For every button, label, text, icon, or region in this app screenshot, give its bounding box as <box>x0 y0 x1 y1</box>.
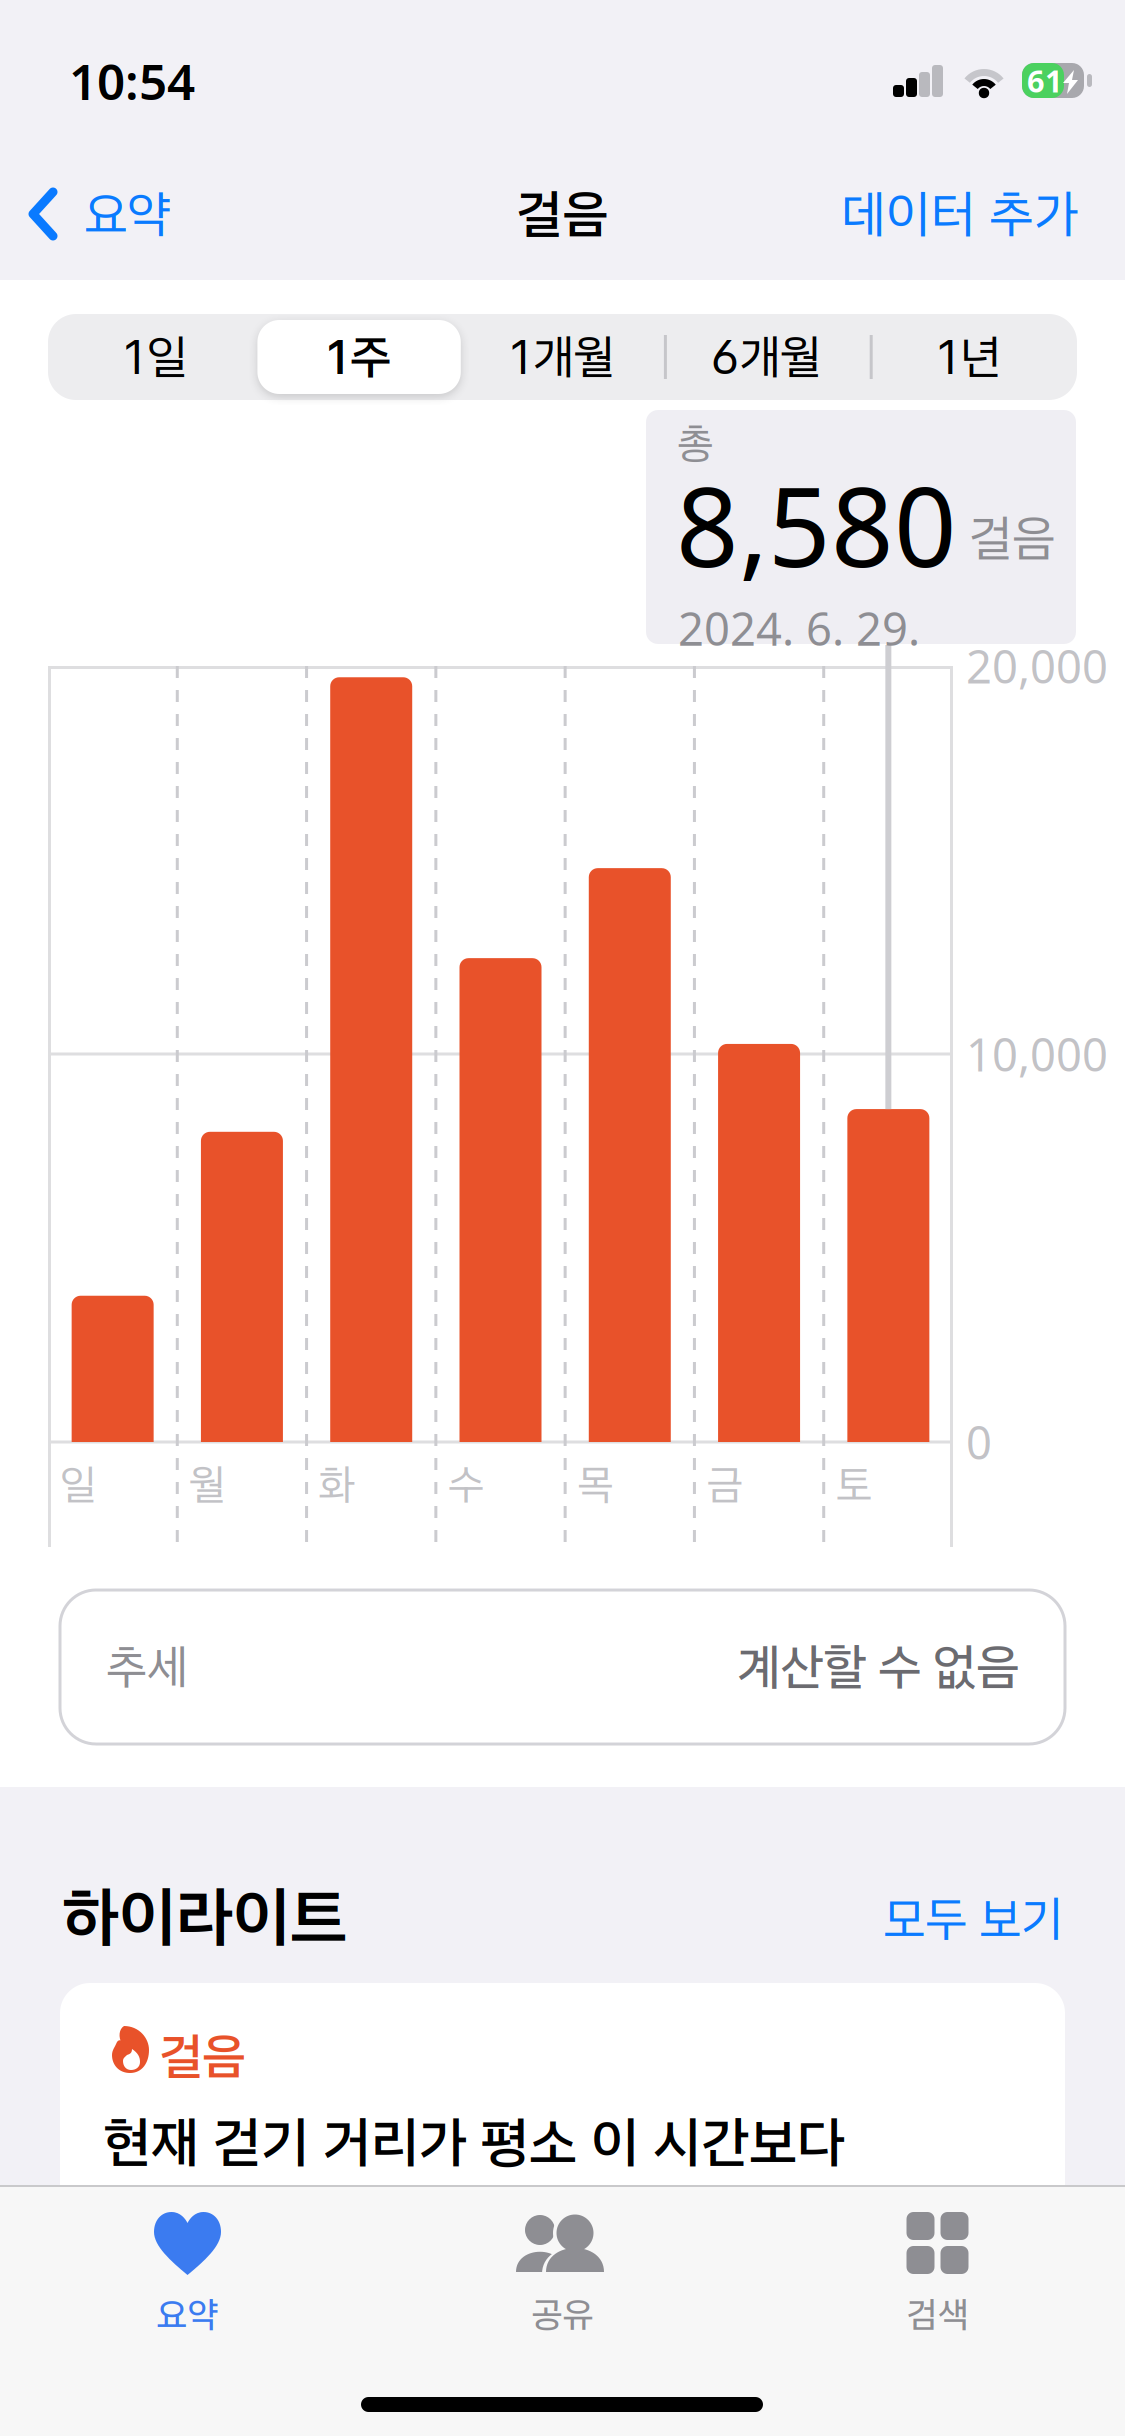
button[interactable]: 공유 <box>375 2185 750 2330</box>
staticText: 현재 걷기 거리가 평소 이 시간보다 <box>103 2109 845 2176</box>
staticText: 61 <box>1027 60 1063 101</box>
staticText: 목 <box>577 1459 614 1510</box>
button[interactable]: 1일 <box>54 320 257 394</box>
staticText: 토 <box>836 1459 873 1510</box>
button[interactable]: 모두 보기 <box>803 1879 1063 1959</box>
staticText: 2024. 6. 29. <box>678 598 920 658</box>
staticText: 1개월 <box>510 328 615 386</box>
button[interactable]: 요약 <box>0 140 194 288</box>
staticText: 수 <box>448 1459 485 1510</box>
staticText: 추세 <box>106 1638 188 1696</box>
staticText: 0 <box>966 1412 992 1472</box>
button[interactable]: 추세 <box>60 1590 1065 1744</box>
button[interactable]: 1주 <box>257 320 461 394</box>
staticText: 공유 <box>531 2293 593 2336</box>
staticText: 검색 <box>906 2293 968 2336</box>
button[interactable]: 6개월 <box>664 320 868 394</box>
staticText: 요약 <box>84 184 170 244</box>
button[interactable]: 1개월 <box>461 320 664 394</box>
staticText: 걸음 <box>159 2026 245 2086</box>
staticText: 금 <box>706 1459 743 1510</box>
staticText: 하이라이트 <box>62 1877 347 1957</box>
staticText: 1일 <box>124 328 188 386</box>
button[interactable]: 데이터 추가 <box>795 140 1125 288</box>
staticText: 총 <box>677 418 714 469</box>
staticText: 걸음 <box>969 508 1055 568</box>
staticText: 1주 <box>327 328 391 386</box>
staticText: 10:54 <box>69 48 195 113</box>
staticText: 8,580 <box>676 452 957 597</box>
staticText: 6개월 <box>710 328 821 386</box>
staticText: 걸음 <box>516 182 608 246</box>
button[interactable]: 검색 <box>750 2185 1125 2330</box>
button[interactable]: 걸음 <box>60 1983 1065 2283</box>
staticText: 모두 보기 <box>883 1890 1063 1948</box>
staticText: 요약 <box>156 2293 218 2336</box>
staticText: 1년 <box>937 328 1001 386</box>
staticText: 일 <box>60 1459 97 1510</box>
button[interactable]: 요약 <box>0 2185 375 2330</box>
staticText: 화 <box>319 1459 356 1510</box>
staticText: 데이터 추가 <box>841 183 1079 245</box>
staticText: 10,000 <box>966 1024 1108 1084</box>
staticText: 계산할 수 없음 <box>737 1637 1019 1697</box>
staticText: 월 <box>189 1459 226 1510</box>
staticText: 20,000 <box>966 636 1108 696</box>
button[interactable]: 1년 <box>868 320 1071 394</box>
